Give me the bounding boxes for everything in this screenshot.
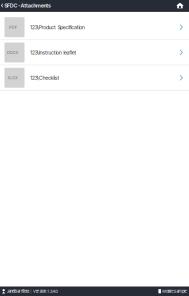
button[interactable]: DOCX: [0, 40, 189, 65]
staticText: Version: 1.3.4.0: [33, 289, 58, 294]
button[interactable]: Home: [176, 0, 189, 11]
staticText: SFDC - Attachments: [4, 2, 51, 9]
staticText: 123\Product Specification: [30, 24, 85, 30]
staticText: JanetBarnfield: [7, 289, 29, 294]
button[interactable]: XLSX: [0, 66, 189, 91]
staticText: XLSX: [7, 75, 18, 80]
button[interactable]: SFDC - Attachments: [0, 0, 51, 11]
button[interactable]: PDF: [0, 15, 189, 40]
staticText: PDF: [9, 25, 17, 30]
staticText: 123\Checklist: [30, 74, 59, 81]
staticText: DOCX: [7, 50, 19, 55]
staticText: Mobile Sample: [162, 289, 187, 294]
staticText: |: [30, 289, 31, 294]
staticText: 123\Instruction leaflet: [30, 49, 76, 56]
